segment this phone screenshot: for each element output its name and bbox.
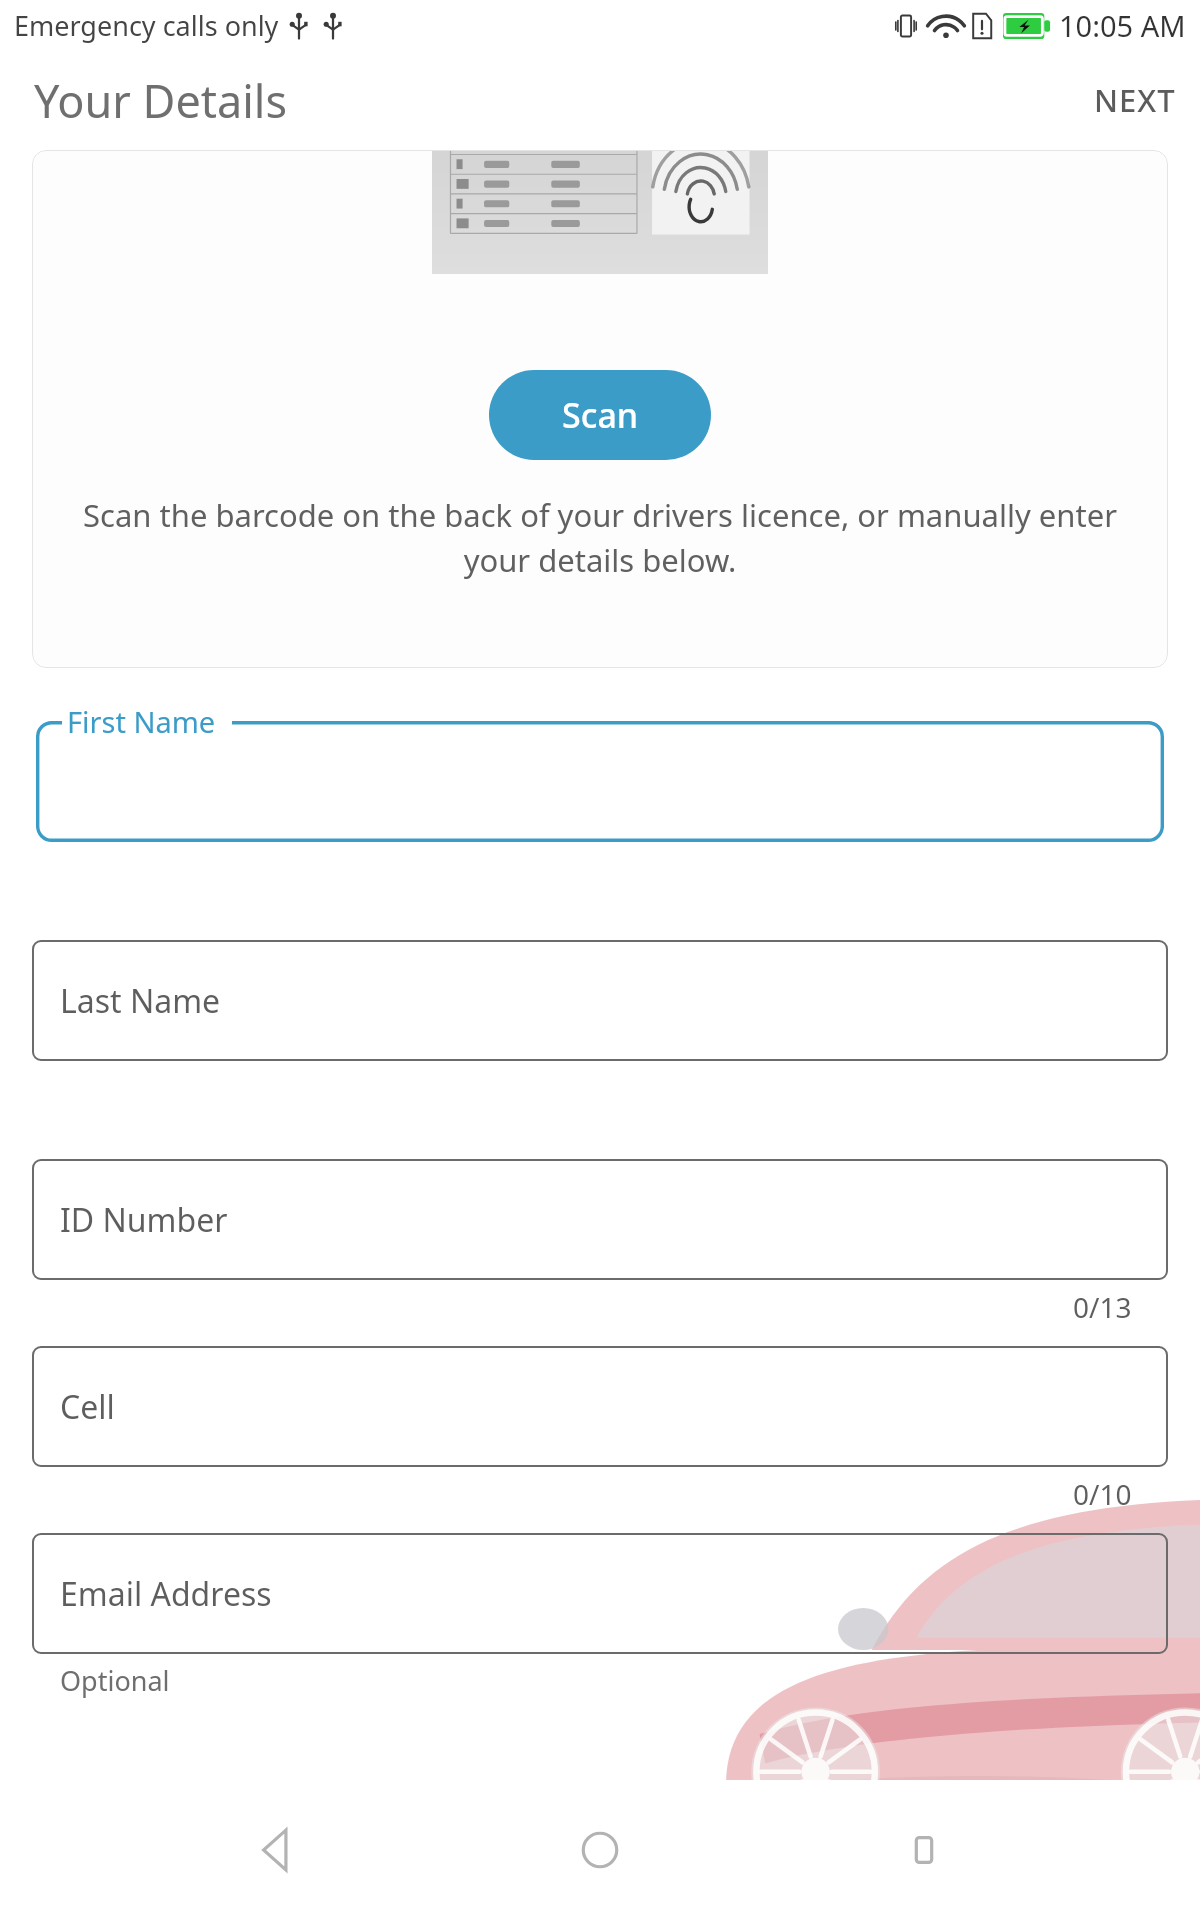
staticText: NEXT <box>1094 79 1176 121</box>
staticText: Email Address <box>60 1572 272 1616</box>
staticText: Cell <box>60 1385 115 1429</box>
staticText: First Name <box>67 702 216 741</box>
staticText: 0/10 <box>1073 1475 1132 1513</box>
staticText: Scan <box>562 392 639 438</box>
button[interactable]: ID Number <box>32 1159 1168 1280</box>
button[interactable]: Last Name <box>32 940 1168 1061</box>
button[interactable]: Back <box>228 1802 324 1898</box>
staticText: 10:05 AM <box>1059 6 1186 45</box>
staticText: 0/13 <box>1073 1288 1132 1326</box>
button[interactable]: First Name <box>36 721 1164 842</box>
button[interactable]: NEXT <box>1070 65 1200 135</box>
button[interactable]: Home <box>552 1802 648 1898</box>
staticText: Emergency calls only <box>14 7 279 44</box>
button[interactable]: Email Address <box>32 1533 1168 1654</box>
button[interactable]: Cell <box>32 1346 1168 1467</box>
staticText: ID Number <box>60 1198 228 1242</box>
staticText: Scan the barcode on the back of your dri… <box>52 494 1148 581</box>
staticText: Last Name <box>60 979 221 1023</box>
button[interactable]: Scan <box>489 370 711 460</box>
button[interactable]: Recents <box>876 1802 972 1898</box>
staticText: Your Details <box>34 70 288 131</box>
staticText: Optional <box>60 1662 170 1699</box>
